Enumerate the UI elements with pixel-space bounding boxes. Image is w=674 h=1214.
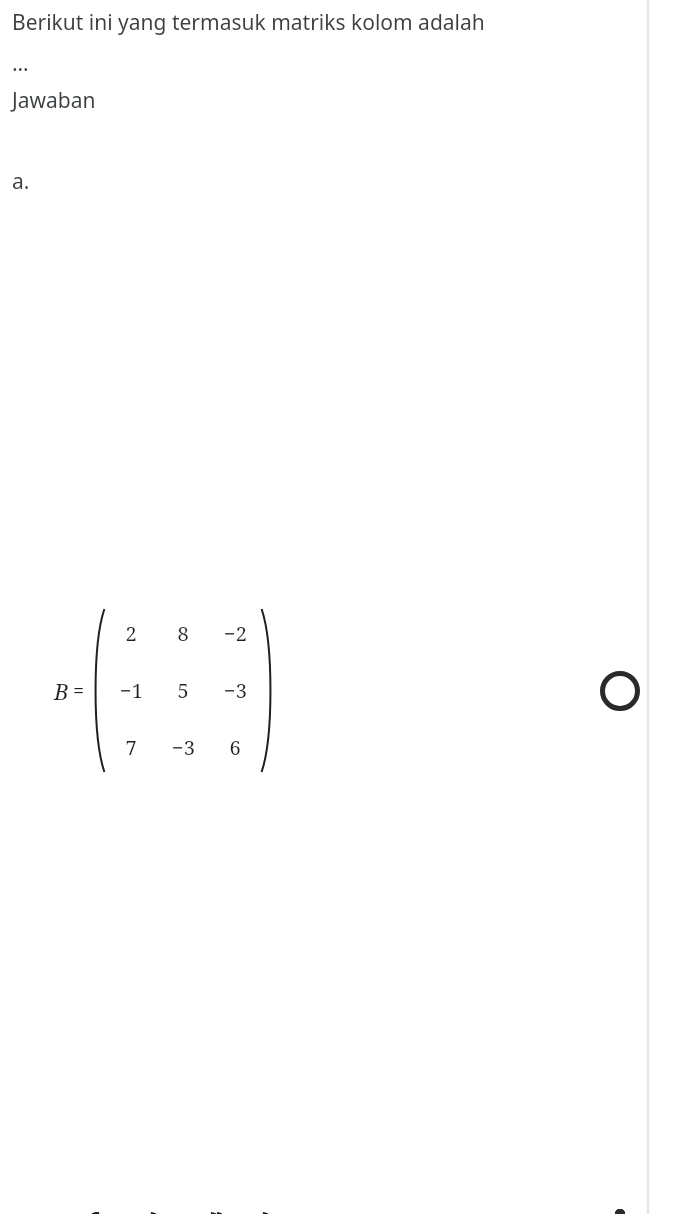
staticText: −1	[120, 677, 143, 704]
staticText: =	[73, 677, 85, 704]
button[interactable]: Pilih jawaban a	[591, 662, 649, 720]
staticText: a.	[12, 167, 30, 196]
button[interactable]: a.	[0, 167, 674, 1214]
staticText: 6	[229, 734, 241, 761]
staticText: B	[54, 676, 69, 706]
staticText: …	[12, 49, 29, 78]
staticText: Berikut ini yang termasuk matriks kolom …	[12, 8, 485, 37]
staticText: −3	[224, 677, 247, 704]
staticText: Jawaban	[12, 86, 96, 115]
staticText: −3	[172, 734, 195, 761]
staticText: 8	[177, 620, 189, 647]
staticText: 7	[125, 734, 137, 761]
staticText: 5	[177, 677, 189, 704]
staticText: −2	[224, 620, 247, 647]
staticText: 2	[125, 620, 137, 647]
